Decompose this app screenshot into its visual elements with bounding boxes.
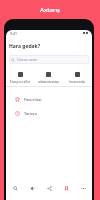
button[interactable]: businesslər: [63, 69, 92, 86]
button[interactable]: More: [75, 180, 92, 196]
button[interactable]: administrasiya: [34, 69, 63, 86]
staticText: 9:41: [10, 31, 17, 36]
staticText: Axtarış: [40, 6, 60, 14]
button[interactable]: Share: [41, 180, 58, 196]
staticText: Hara gedək?: [9, 43, 41, 50]
staticText: Ünvan axtar: [17, 57, 38, 62]
button[interactable]: Pasaj və rəflər: [6, 69, 34, 86]
button[interactable]: Ünvan axtar: [9, 55, 89, 64]
button[interactable]: Saved: [58, 180, 75, 196]
staticText: Tarixçə: [24, 111, 38, 116]
button[interactable]: Favoritlər: [6, 92, 92, 106]
staticText: Favoritlər: [24, 97, 42, 102]
button[interactable]: Tarixçə: [6, 106, 92, 120]
button[interactable]: Search: [6, 180, 24, 196]
staticText: Pasaj və rəflər: [10, 80, 30, 84]
staticText: administrasiya: [38, 80, 59, 84]
staticText: businesslər: [69, 80, 86, 84]
button[interactable]: Transit: [24, 180, 41, 196]
